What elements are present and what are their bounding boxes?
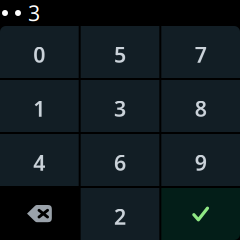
- staticText: 5: [114, 40, 126, 69]
- button[interactable]: 6: [81, 134, 159, 186]
- button[interactable]: Delete: [0, 188, 79, 240]
- staticText: 2: [114, 202, 126, 231]
- staticText: 6: [114, 148, 126, 177]
- button[interactable]: 8: [161, 80, 240, 132]
- button[interactable]: Confirm: [161, 188, 240, 240]
- staticText: 3: [114, 94, 126, 123]
- staticText: 3: [28, 0, 40, 27]
- staticText: 0: [33, 40, 45, 69]
- button[interactable]: 0: [0, 26, 79, 78]
- button[interactable]: 3: [81, 80, 159, 132]
- button[interactable]: 4: [0, 134, 79, 186]
- staticText: 8: [195, 94, 207, 123]
- staticText: 1: [33, 94, 45, 123]
- button[interactable]: 7: [161, 26, 240, 78]
- button[interactable]: 2: [81, 188, 159, 240]
- button[interactable]: 1: [0, 80, 79, 132]
- button[interactable]: 5: [81, 26, 159, 78]
- staticText: 9: [195, 148, 207, 177]
- staticText: 7: [195, 40, 207, 69]
- staticText: 4: [33, 148, 45, 177]
- button[interactable]: 9: [161, 134, 240, 186]
